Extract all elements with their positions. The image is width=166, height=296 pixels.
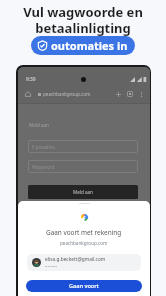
staticText: peachbankgroup.com [43, 91, 91, 97]
staticText: Meld aan [29, 122, 49, 128]
other: More options [139, 92, 144, 97]
staticText: E-posadres [32, 144, 55, 150]
button[interactable]: outomaties in [31, 36, 135, 55]
staticText: 9:30 [26, 76, 36, 83]
button[interactable]: Meld aan [28, 185, 138, 199]
staticText: Gaan voort met rekening [46, 228, 122, 237]
other: Home [25, 91, 31, 97]
staticText: outomaties in [51, 38, 128, 53]
staticText: Vul wagwoorde en betaalinligting [23, 3, 143, 36]
staticText: Meld aan [73, 189, 93, 195]
staticText: Wagwoord [32, 164, 55, 170]
other: Tabs [127, 91, 133, 97]
staticText: elisa.g.beckett@gmail.com [45, 256, 106, 263]
button[interactable]: elisa.g.beckett@gmail.com [27, 254, 141, 271]
staticText: peachbankgroup.com [60, 240, 108, 246]
other: Bookmark [116, 92, 121, 97]
button[interactable]: Gaan voort [26, 280, 142, 292]
staticText: Gaan voort [69, 282, 99, 290]
button[interactable]: Wagwoord [28, 160, 138, 173]
button[interactable]: E-posadres [28, 140, 138, 153]
staticText: ••••••••• [45, 264, 58, 269]
